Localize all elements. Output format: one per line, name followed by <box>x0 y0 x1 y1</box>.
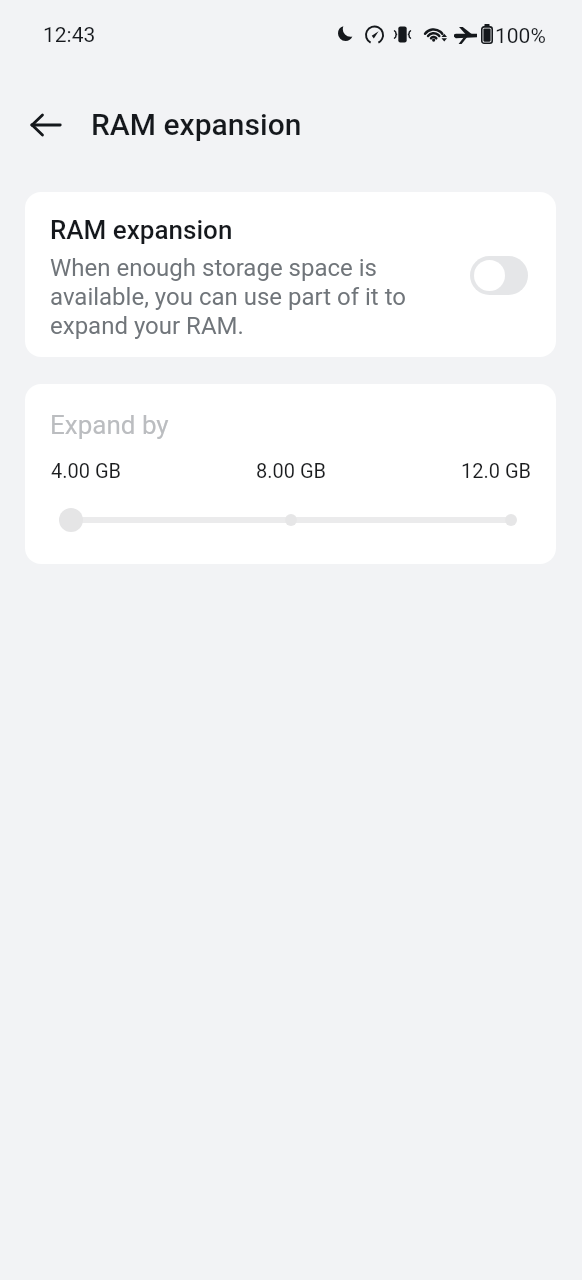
staticText: RAM expansion <box>91 107 302 142</box>
staticText: 8.00 GB <box>256 459 327 482</box>
staticText: 12.0 GB <box>461 459 532 482</box>
button[interactable]: RAM expansion toggle <box>470 256 528 295</box>
staticText: When enough storage space is available, … <box>50 254 406 340</box>
staticText: 4.00 GB <box>51 459 122 482</box>
staticText: 100% <box>495 24 546 49</box>
staticText: Expand by <box>50 410 169 440</box>
staticText: RAM expansion <box>50 215 233 245</box>
button[interactable]: Back <box>22 101 70 149</box>
staticText: 12:43 <box>43 23 96 48</box>
button[interactable]: Expand by slider <box>55 504 526 536</box>
button[interactable]: RAM expansion <box>25 192 556 357</box>
